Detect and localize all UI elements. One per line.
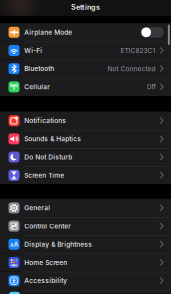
button[interactable]: General: [0, 199, 171, 217]
button[interactable]: Do Not Disturb: [0, 148, 171, 166]
staticText: Bluetooth: [24, 65, 54, 73]
staticText: Screen Time: [24, 171, 64, 179]
staticText: Off: [146, 83, 155, 91]
staticText: Airplane Mode: [24, 28, 72, 36]
button[interactable]: Cellular: [0, 78, 171, 96]
staticText: Control Center: [24, 222, 71, 230]
button[interactable]: Control Center: [0, 217, 171, 235]
button[interactable]: Wi-Fi: [0, 41, 171, 60]
staticText: Not Connected: [107, 65, 155, 73]
button[interactable]: Home Screen: [0, 253, 171, 272]
staticText: Accessibility: [24, 277, 67, 285]
staticText: Do Not Disturb: [24, 153, 72, 161]
staticText: Wi-Fi: [24, 46, 42, 54]
staticText: Settings: [71, 3, 100, 12]
staticText: ETIC823C1: [120, 46, 155, 55]
staticText: Notifications: [24, 117, 66, 125]
staticText: Sounds & Haptics: [24, 135, 81, 143]
button[interactable]: Bluetooth: [0, 60, 171, 78]
button[interactable]: Sounds & Haptics: [0, 130, 171, 148]
button[interactable]: A: [0, 235, 171, 253]
staticText: A: [10, 242, 13, 248]
button[interactable]: Accessibility: [0, 272, 171, 290]
staticText: Display & Brightness: [24, 240, 92, 248]
button[interactable]: Notifications: [0, 112, 171, 130]
staticText: Cellular: [24, 83, 50, 91]
button[interactable]: Screen Time: [0, 166, 171, 184]
staticText: Home Screen: [24, 258, 67, 266]
staticText: A: [14, 241, 18, 248]
button[interactable]: Airplane Mode: [0, 23, 171, 41]
staticText: General: [24, 204, 50, 212]
